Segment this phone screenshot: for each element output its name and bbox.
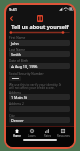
button[interactable]: Home bbox=[9, 127, 24, 140]
staticText: Last Name bbox=[9, 48, 25, 52]
staticText: Resources bbox=[57, 134, 70, 138]
button[interactable]: Back bbox=[8, 15, 14, 21]
staticText: Tell us about yourself bbox=[6, 23, 74, 30]
staticText: 9:41 bbox=[9, 7, 17, 12]
button[interactable]: John bbox=[9, 40, 70, 46]
button[interactable]: Rates bbox=[39, 127, 55, 140]
button[interactable]: Denver bbox=[9, 117, 70, 123]
button[interactable]: Loans bbox=[24, 127, 39, 140]
staticText: Denver bbox=[11, 118, 24, 123]
staticText: will not affect your credit score. bbox=[9, 86, 55, 90]
staticText: First Name bbox=[9, 36, 26, 40]
staticText: 1 Main St bbox=[11, 95, 28, 100]
staticText: Loans bbox=[28, 134, 36, 138]
staticText: Smith bbox=[11, 52, 22, 57]
staticText: Aug 10, 1996 bbox=[15, 64, 38, 69]
button[interactable]: Smith bbox=[9, 51, 70, 57]
button[interactable]: 1 Main St bbox=[9, 94, 70, 100]
button[interactable]: Resources bbox=[55, 127, 71, 140]
button[interactable] bbox=[9, 76, 21, 81]
other: App logo bbox=[37, 15, 43, 22]
staticText: Date of Birth bbox=[9, 59, 29, 63]
staticText: Home bbox=[13, 134, 21, 138]
button[interactable]: Aug 10, 1996 bbox=[9, 63, 70, 69]
staticText: Social Security Number bbox=[9, 72, 44, 76]
staticText: John bbox=[11, 41, 19, 46]
staticText: Rates bbox=[44, 134, 51, 138]
staticText: Address bbox=[9, 91, 22, 95]
staticText: City bbox=[9, 114, 15, 118]
staticText: We use this to verify your identity. It bbox=[9, 83, 62, 87]
staticText: Address 2 bbox=[9, 102, 24, 106]
